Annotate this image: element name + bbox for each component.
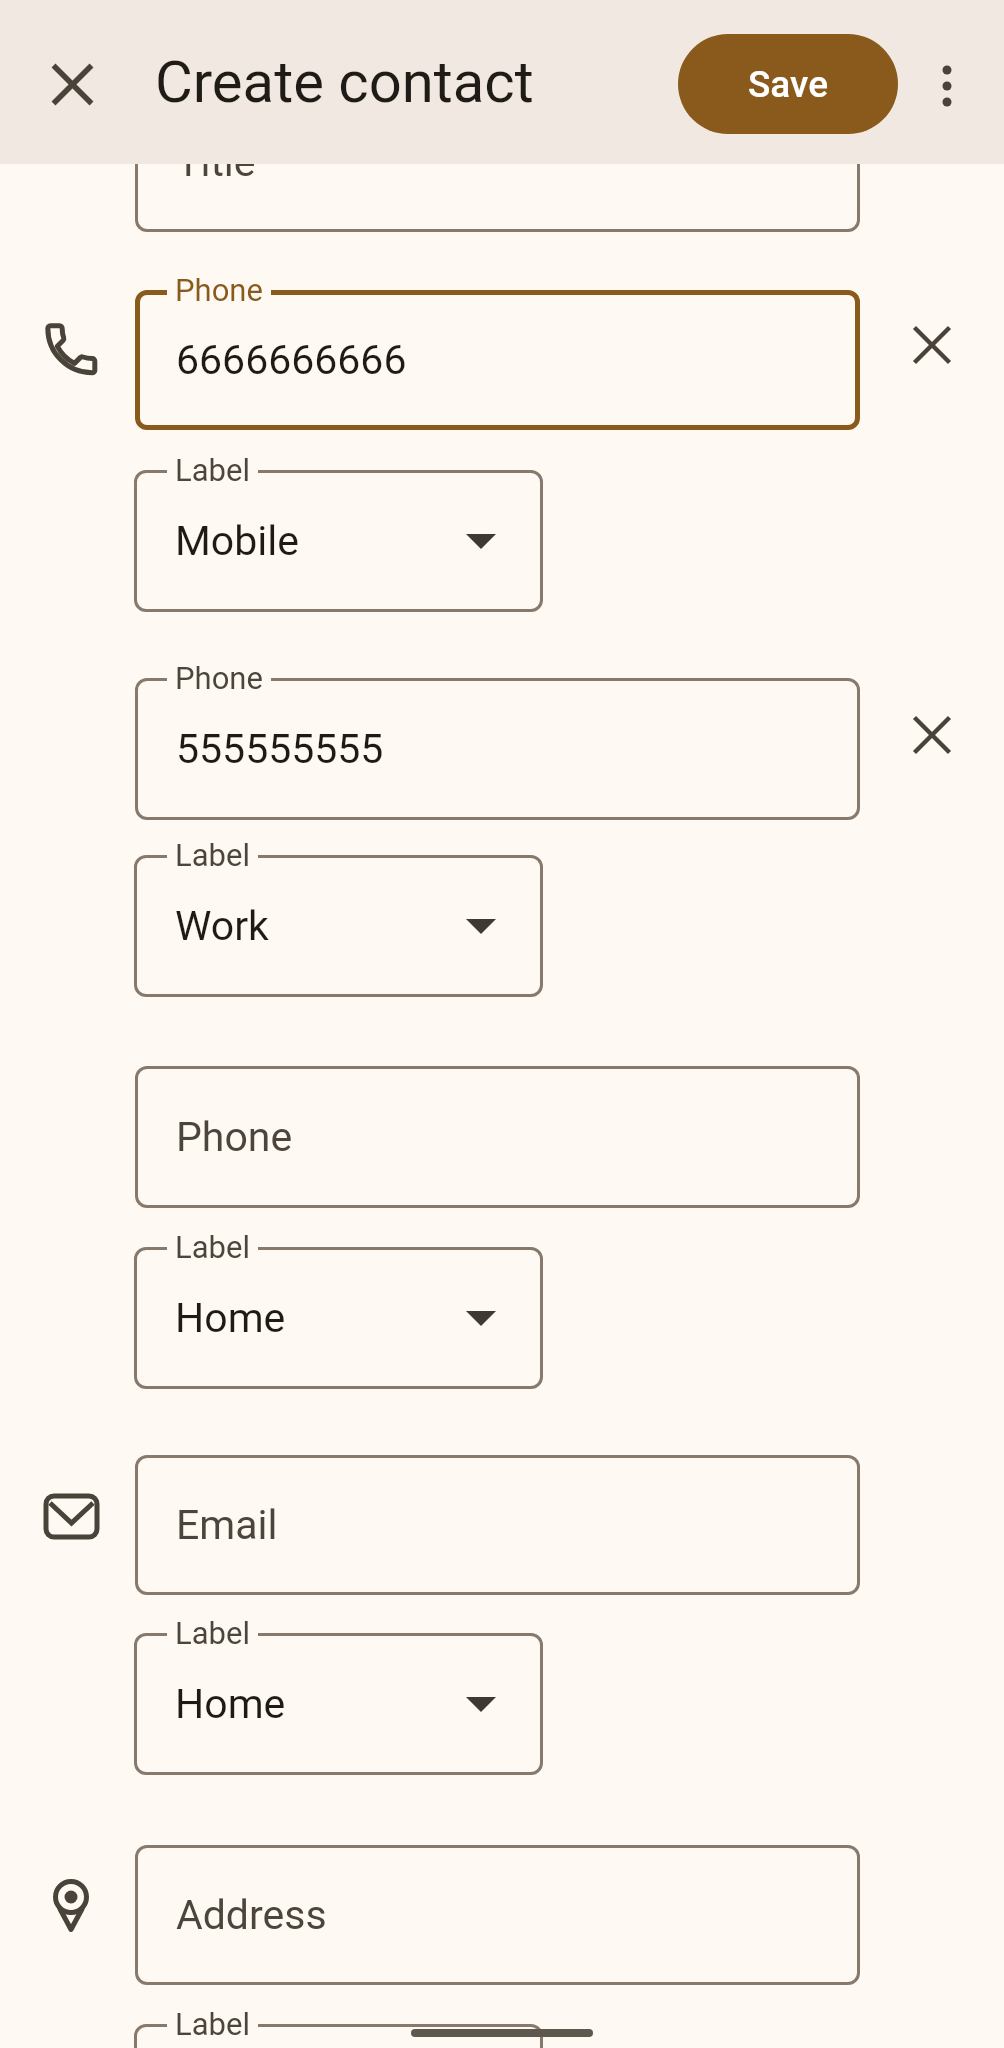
staticText: Work xyxy=(175,902,269,950)
staticText: 6666666666 xyxy=(176,336,407,384)
staticText: Create contact xyxy=(155,48,534,116)
staticText: 555555555 xyxy=(176,725,384,773)
staticText: Home xyxy=(175,1680,286,1728)
staticText: Label xyxy=(175,1229,250,1265)
staticText: Email xyxy=(176,1501,278,1549)
staticText: Phone xyxy=(175,272,263,308)
staticText: Title xyxy=(176,138,256,186)
staticText: Address xyxy=(176,1891,327,1939)
staticText: Phone xyxy=(175,660,263,696)
staticText: Home xyxy=(175,1294,286,1342)
staticText: Label xyxy=(175,1615,250,1651)
staticText: Phone xyxy=(176,1113,293,1161)
staticText: Label xyxy=(175,2006,250,2042)
staticText: Save xyxy=(748,63,829,106)
staticText: Label xyxy=(175,452,250,488)
staticText: Mobile xyxy=(175,517,299,565)
staticText: Label xyxy=(175,837,250,873)
